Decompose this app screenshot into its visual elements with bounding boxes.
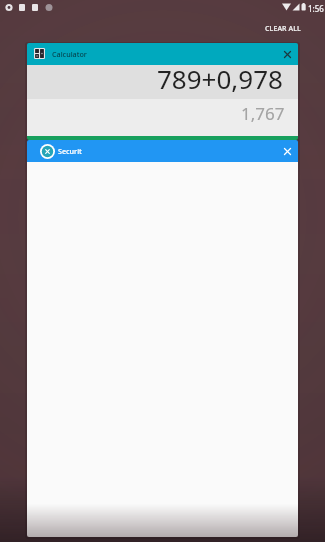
staticText: 1,767	[241, 102, 285, 125]
button[interactable]: CLEAR ALL	[261, 22, 305, 35]
staticText: 1:56	[308, 3, 324, 14]
button[interactable]	[276, 43, 298, 65]
staticText: CLEAR ALL	[265, 24, 301, 34]
button[interactable]	[276, 140, 298, 162]
button[interactable]: Securit	[27, 140, 298, 537]
staticText: Calculator	[52, 49, 87, 59]
staticText: 789+0,978	[157, 61, 283, 95]
button[interactable]: Calculator	[27, 43, 298, 140]
staticText: Securit	[58, 146, 82, 156]
